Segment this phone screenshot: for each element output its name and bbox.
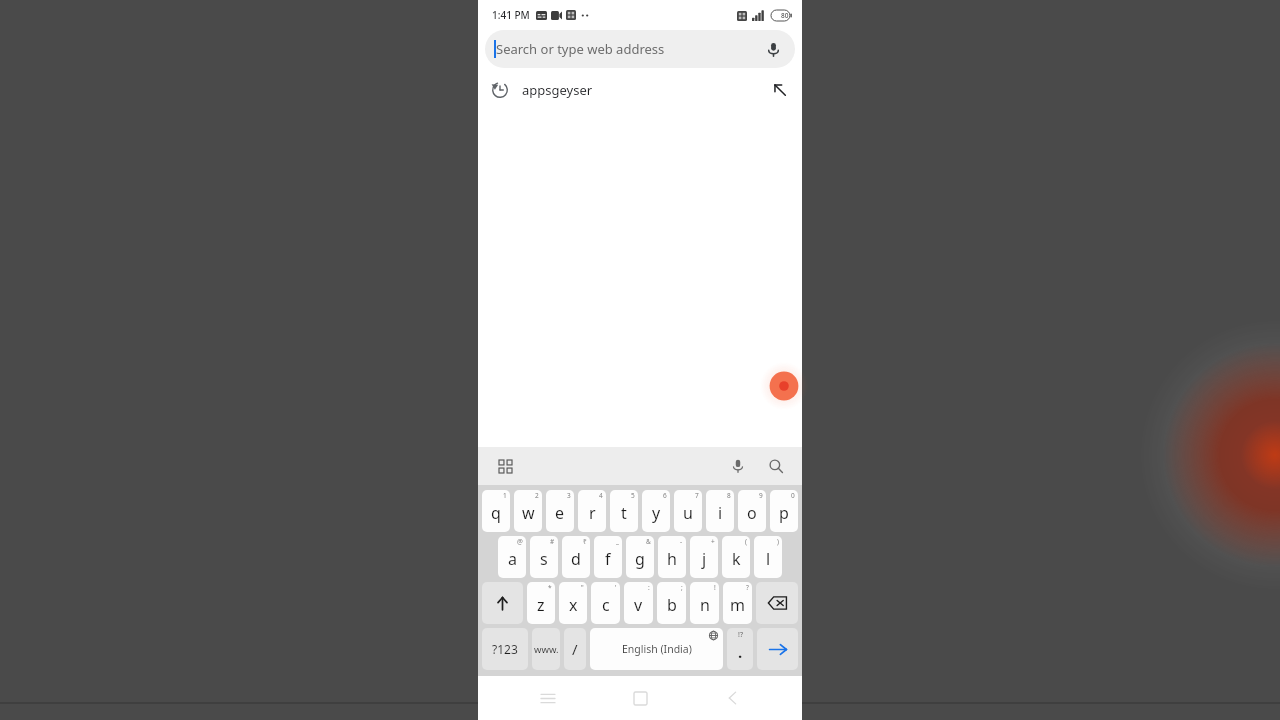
button[interactable]: v	[624, 582, 653, 624]
button[interactable]: k	[722, 536, 750, 578]
button[interactable]: e	[546, 490, 574, 532]
staticText: -	[680, 537, 683, 546]
staticText: i	[718, 502, 723, 524]
button[interactable]: Recent apps	[526, 676, 570, 720]
button[interactable]: l	[754, 536, 782, 578]
button[interactable]: x	[559, 582, 587, 624]
button[interactable]: Slash	[564, 628, 586, 670]
button[interactable]: o	[738, 490, 766, 532]
staticText: @	[517, 537, 523, 546]
staticText: q	[491, 502, 501, 524]
button[interactable]: Voice input	[724, 452, 752, 480]
staticText: !	[714, 583, 716, 592]
button[interactable]: u	[674, 490, 702, 532]
staticText: ?	[746, 583, 749, 592]
staticText: appsgeyser	[522, 81, 593, 99]
staticText: u	[683, 502, 693, 524]
staticText: .	[738, 642, 743, 662]
staticText: v	[634, 594, 643, 616]
staticText: 4	[599, 491, 603, 500]
button[interactable]: i	[706, 490, 734, 532]
staticText: ?123	[492, 641, 518, 657]
button[interactable]: Home	[618, 676, 662, 720]
staticText: s	[540, 548, 548, 570]
button[interactable]: Back	[710, 676, 754, 720]
staticText: #	[550, 537, 555, 546]
button[interactable]: h	[658, 536, 686, 578]
staticText: )	[777, 537, 779, 546]
staticText: k	[732, 548, 741, 570]
button[interactable]: s	[530, 536, 558, 578]
staticText: /	[572, 639, 578, 659]
staticText: j	[702, 548, 707, 570]
button[interactable]: m	[723, 582, 752, 624]
staticText: "	[581, 583, 584, 592]
button[interactable]: English (India)	[590, 628, 723, 670]
staticText: 1	[503, 491, 507, 500]
staticText: h	[667, 548, 677, 570]
button[interactable]: Floating action bubble	[760, 362, 808, 410]
staticText: 3	[567, 491, 571, 500]
staticText: (	[745, 537, 747, 546]
button[interactable]: w	[514, 490, 542, 532]
staticText: 8	[727, 491, 731, 500]
staticText: r	[589, 502, 596, 524]
button[interactable]: Shift	[482, 582, 523, 624]
staticText: f	[605, 548, 611, 570]
button[interactable]: Go	[757, 628, 798, 670]
staticText: 0	[791, 491, 795, 500]
staticText: g	[635, 548, 645, 570]
button[interactable]: t	[610, 490, 638, 532]
button[interactable]: Search	[762, 452, 790, 480]
staticText: t	[621, 502, 627, 524]
button[interactable]: f	[594, 536, 622, 578]
button[interactable]: a	[498, 536, 526, 578]
staticText: English (India)	[622, 642, 692, 656]
staticText: 7	[695, 491, 699, 500]
staticText: b	[667, 594, 677, 616]
staticText: 1:41 PM	[492, 8, 530, 22]
button[interactable]: c	[591, 582, 620, 624]
button[interactable]: Voice search	[759, 35, 787, 63]
button[interactable]: Keyboard menu	[492, 453, 518, 479]
staticText: :	[648, 583, 650, 592]
button[interactable]: r	[578, 490, 606, 532]
staticText: e	[555, 502, 565, 524]
staticText: 2	[535, 491, 539, 500]
staticText: ₹	[583, 537, 587, 546]
staticText: w	[522, 502, 535, 524]
staticText: '	[615, 583, 617, 592]
button[interactable]: www dot	[532, 628, 560, 670]
staticText: n	[700, 594, 710, 616]
button[interactable]: d	[562, 536, 590, 578]
staticText: l	[766, 548, 771, 570]
button[interactable]: y	[642, 490, 670, 532]
button[interactable]: q	[482, 490, 510, 532]
button[interactable]: Symbols	[482, 628, 528, 670]
staticText: z	[537, 594, 545, 616]
button[interactable]: z	[527, 582, 555, 624]
button[interactable]: n	[690, 582, 719, 624]
button[interactable]: j	[690, 536, 718, 578]
staticText: 80	[781, 11, 789, 20]
staticText: Search or type web address	[496, 40, 665, 58]
staticText: ;	[681, 583, 683, 592]
staticText: 6	[663, 491, 667, 500]
staticText: d	[571, 548, 581, 570]
staticText: x	[569, 594, 578, 616]
button[interactable]: b	[657, 582, 686, 624]
staticText: m	[730, 594, 745, 616]
staticText: a	[508, 548, 517, 570]
staticText: p	[779, 502, 789, 524]
button[interactable]: appsgeyser	[478, 68, 802, 112]
staticText: &	[646, 537, 651, 546]
staticText: +	[711, 537, 715, 546]
button[interactable]: Period	[727, 628, 753, 670]
button[interactable]: Backspace	[756, 582, 798, 624]
staticText: www.	[534, 643, 559, 656]
button[interactable]: p	[770, 490, 798, 532]
button[interactable]: Insert suggestion	[758, 68, 802, 112]
button[interactable]: Search or type web address	[485, 30, 795, 68]
staticText: !?	[738, 630, 743, 640]
button[interactable]: g	[626, 536, 654, 578]
